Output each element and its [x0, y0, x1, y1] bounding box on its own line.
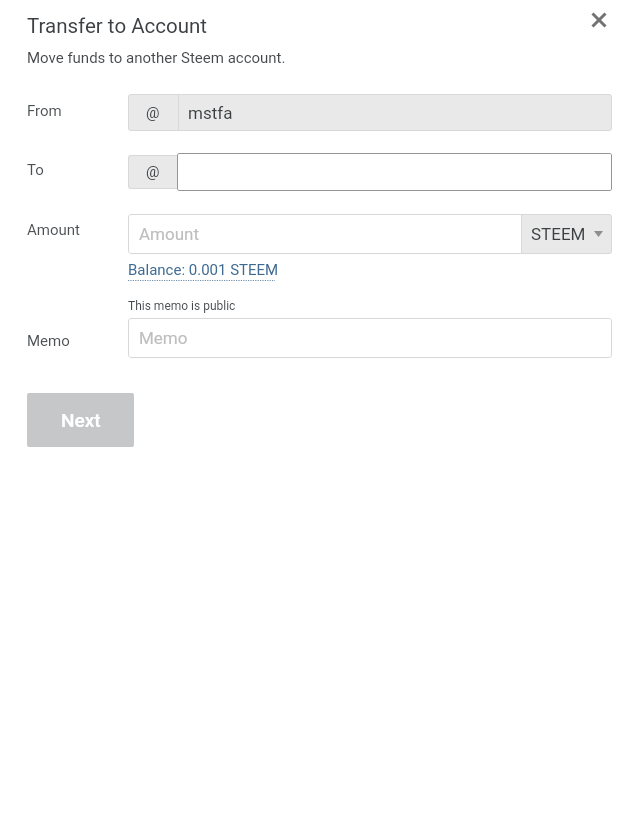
button[interactable]: @: [128, 155, 178, 189]
button[interactable]: @: [128, 94, 612, 131]
button[interactable]: STEEM: [522, 214, 612, 254]
staticText: @: [146, 104, 160, 122]
button[interactable]: Memo: [128, 318, 612, 358]
button[interactable]: Next: [27, 393, 134, 447]
staticText: Move funds to another Steem account.: [27, 49, 286, 67]
button[interactable]: Close: [582, 3, 616, 37]
button[interactable]: Amount: [128, 214, 521, 254]
staticText: Amount: [139, 224, 200, 244]
staticText: Balance: 0.001 STEEM: [128, 261, 279, 279]
button[interactable]: Recipient account: [177, 153, 612, 191]
staticText: Transfer to Account: [27, 14, 208, 38]
button[interactable]: Balance: 0.001 STEEM: [128, 261, 279, 279]
staticText: This memo is public: [128, 299, 236, 313]
staticText: mstfa: [188, 103, 233, 123]
staticText: @: [146, 163, 160, 181]
staticText: Amount: [27, 221, 80, 239]
staticText: Next: [61, 409, 101, 431]
staticText: Memo: [139, 328, 188, 348]
staticText: From: [27, 102, 62, 120]
staticText: Memo: [27, 332, 70, 350]
staticText: To: [27, 161, 44, 179]
staticText: STEEM: [531, 224, 586, 244]
